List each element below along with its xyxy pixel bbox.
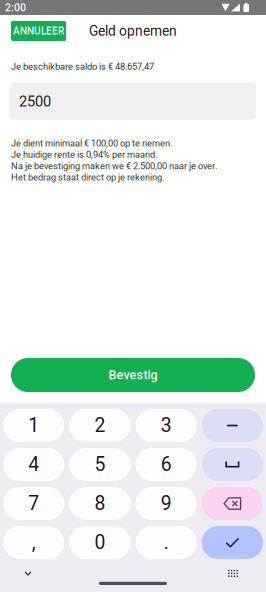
staticText: Bevestig [108, 368, 157, 382]
staticText: Na je bevestiging maken we € 2.500,00 na… [11, 161, 217, 171]
button[interactable]: 8 [69, 487, 130, 520]
staticText: 8 [94, 492, 105, 515]
staticText: 3 [161, 414, 172, 437]
staticText: Het bedrag staat direct op je rekening. [11, 172, 164, 183]
staticText: ANNULEER [13, 25, 64, 37]
button[interactable]: 3 [135, 409, 197, 442]
button[interactable]: 0 [69, 526, 130, 559]
button[interactable]: 6 [135, 448, 197, 481]
button[interactable]: 9 [135, 487, 197, 520]
staticText: 6 [161, 453, 172, 476]
staticText: , [32, 531, 36, 554]
button[interactable]: ANNULEER [11, 21, 66, 41]
staticText: 4 [28, 453, 39, 476]
staticText: 2 [94, 414, 105, 437]
staticText: . [164, 531, 169, 554]
button[interactable]: 1 [3, 409, 64, 442]
staticText: 2:00 [5, 1, 26, 14]
button[interactable]: 2 [69, 409, 130, 442]
button[interactable]: Keyboard settings [218, 566, 248, 580]
button[interactable]: , [3, 526, 64, 559]
staticText: 2500 [19, 93, 51, 110]
button[interactable]: Space [202, 448, 263, 481]
staticText: 9 [161, 492, 172, 515]
staticText: Geld opnemen [89, 23, 177, 39]
staticText: 1 [28, 414, 39, 437]
button[interactable]: 5 [69, 448, 130, 481]
staticText: 5 [94, 453, 105, 476]
button[interactable]: 7 [3, 487, 64, 520]
button[interactable]: Backspace [202, 487, 263, 520]
staticText: Je huidige rente is 0,94% per maand. [11, 149, 157, 160]
button[interactable]: Minus [202, 409, 263, 442]
button[interactable]: Hide keyboard [13, 566, 43, 580]
staticText: 7 [28, 492, 39, 515]
button[interactable]: 4 [3, 448, 64, 481]
button[interactable]: . [135, 526, 197, 559]
staticText: 0 [94, 531, 105, 554]
button[interactable]: Bevestig [11, 358, 255, 392]
staticText: Je beschikbare saldo is € 48.657,47 [11, 61, 154, 72]
button[interactable]: Confirm [202, 526, 263, 559]
staticText: Je dient minimaal € 100,00 op te nemen. [11, 138, 172, 149]
